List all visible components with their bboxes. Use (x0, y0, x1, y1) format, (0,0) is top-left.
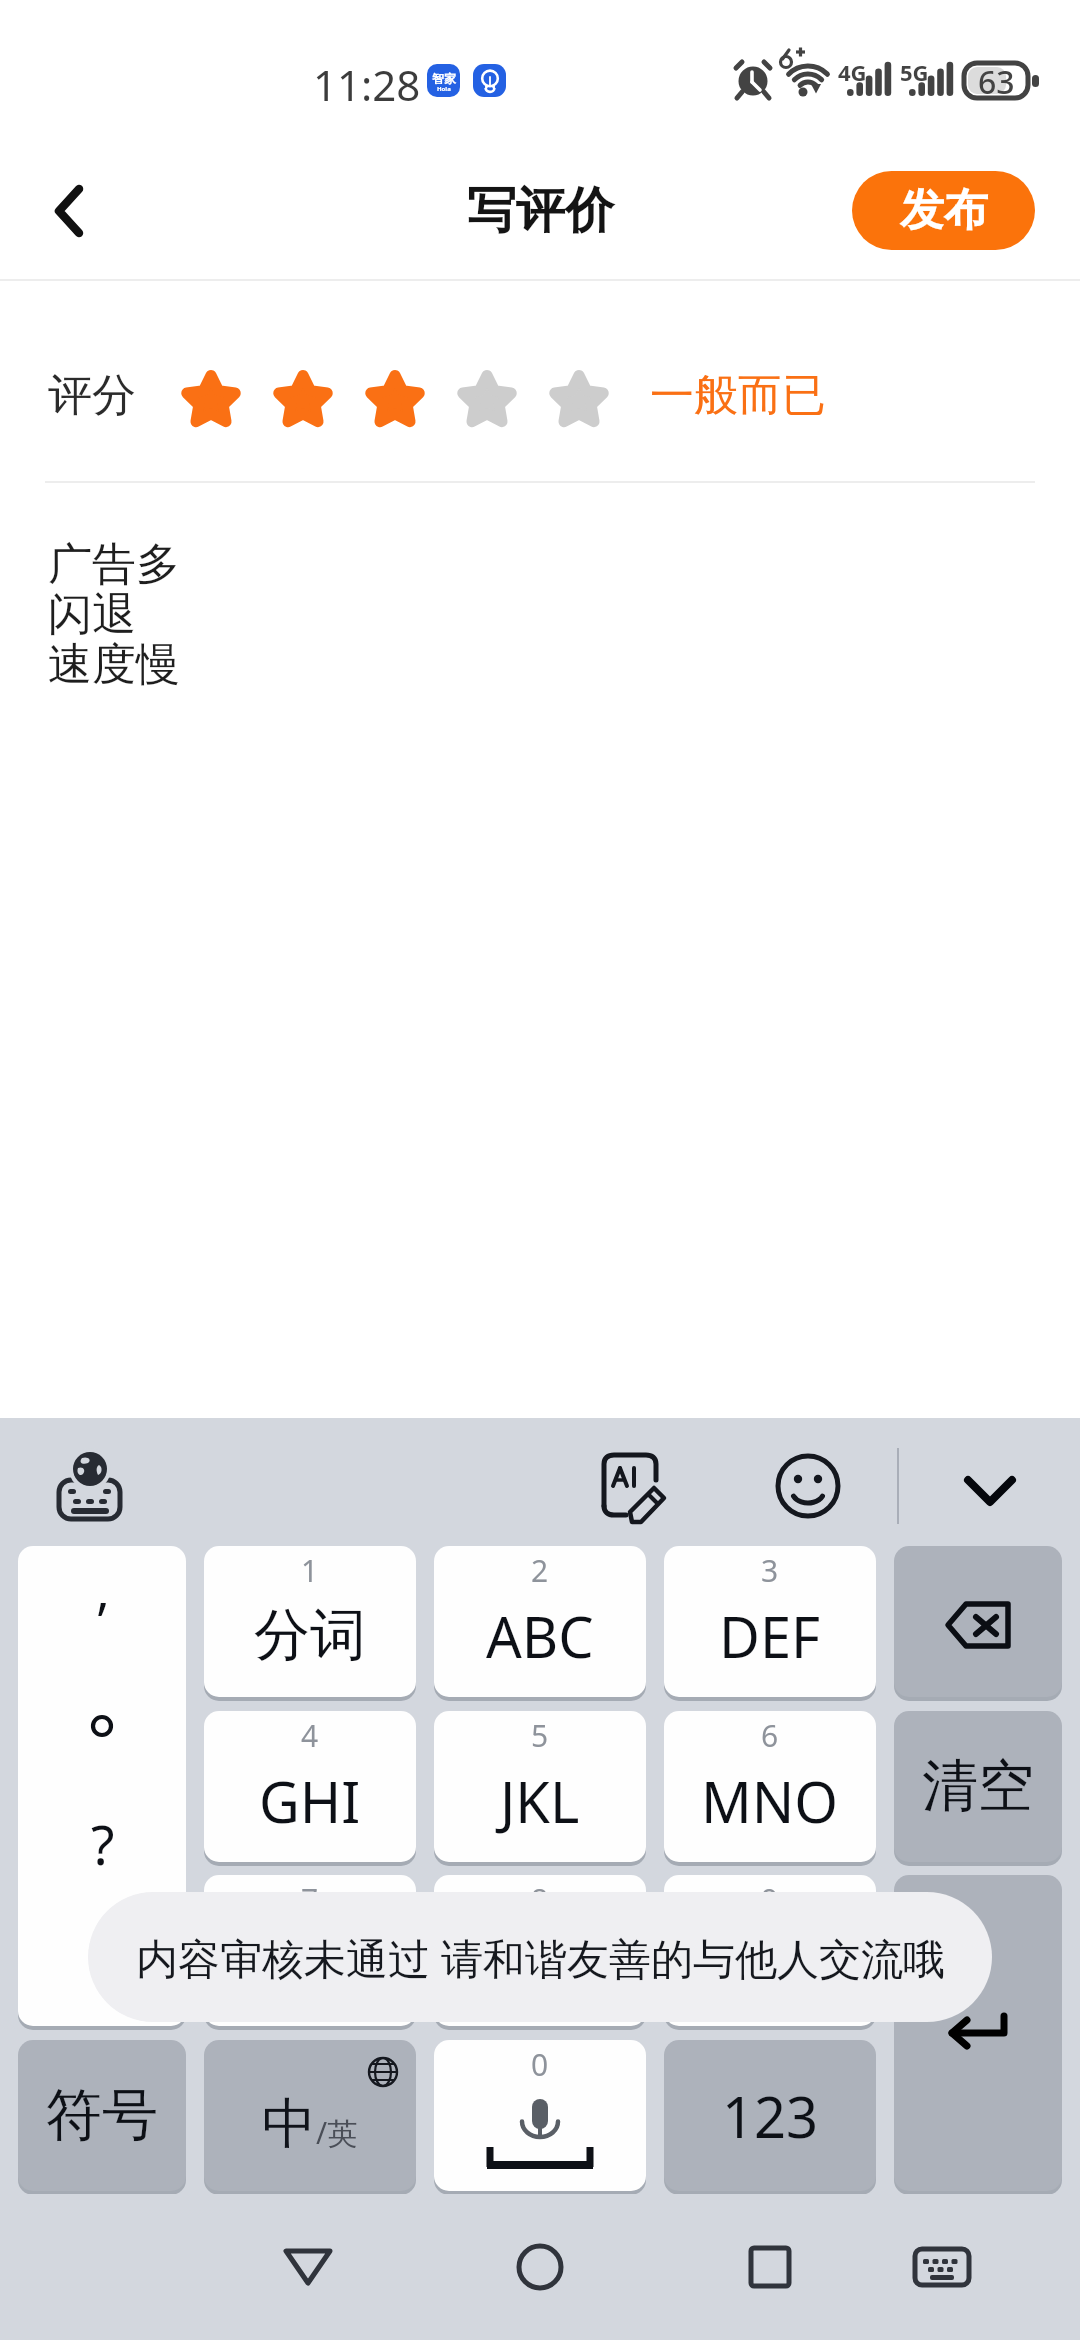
button[interactable]: 8 (434, 1875, 646, 2026)
button[interactable]: Keyboard (882, 2217, 1002, 2317)
staticText: 符号 (46, 2080, 158, 2151)
staticText: 2 (531, 1550, 549, 1591)
staticText: DEF (719, 1598, 821, 1674)
staticText: 11:28 (313, 56, 421, 113)
button[interactable]: 2 (434, 1546, 646, 1697)
button[interactable]: 符号 (18, 2040, 186, 2191)
staticText: 清空 (922, 1751, 1034, 1822)
staticText: 123 (722, 2078, 819, 2154)
staticText: , (96, 1553, 110, 1624)
button[interactable]: 0 (434, 2040, 646, 2191)
staticText: 8 (531, 1879, 549, 1920)
staticText: ? (91, 1807, 115, 1881)
button[interactable]: 1 (204, 1546, 416, 1697)
button[interactable]: Input languages (42, 1438, 138, 1534)
staticText: 1 (301, 1550, 319, 1591)
button[interactable]: 4 (204, 1711, 416, 1862)
staticText: 5 (531, 1715, 549, 1756)
staticText: GHI (259, 1763, 361, 1839)
button[interactable] (894, 1546, 1062, 1697)
button[interactable]: , (18, 1546, 186, 2026)
button[interactable]: 5 (434, 1711, 646, 1862)
staticText: 内容审核未通过 请和谐友善的与他人交流哦 (136, 1929, 945, 1986)
staticText: 中 (262, 2090, 316, 2158)
staticText: WXYZ (706, 1932, 834, 1997)
staticText: 分词 (254, 1600, 366, 1671)
button[interactable]: 3 (664, 1546, 876, 1697)
button[interactable]: Hide keyboard (934, 1438, 1046, 1534)
staticText: TUV (487, 1927, 593, 2003)
button[interactable]: Back (248, 2217, 368, 2317)
button[interactable]: 6 (664, 1711, 876, 1862)
button[interactable]: Emoji (762, 1440, 854, 1532)
staticText: 5G (900, 57, 929, 87)
staticText: ABC (486, 1598, 594, 1674)
staticText: 评分 (48, 368, 136, 423)
staticText: 4G (838, 57, 867, 87)
button[interactable]: AI writing (586, 1440, 678, 1532)
button[interactable]: 9 (664, 1875, 876, 2026)
staticText: 3 (761, 1550, 779, 1591)
staticText: JKL (500, 1763, 580, 1839)
staticText: 63 (978, 60, 1015, 104)
staticText: /英 (316, 2112, 358, 2153)
button[interactable]: 发布 (852, 171, 1035, 250)
button[interactable]: 清空 (894, 1711, 1062, 1862)
button[interactable]: 7 (204, 1875, 416, 2026)
staticText: 6 (761, 1715, 779, 1756)
button[interactable]: Rating 3 of 5 (182, 355, 612, 435)
button[interactable] (894, 1875, 1062, 2191)
staticText: 智家 (432, 71, 456, 86)
button[interactable]: Recent apps (710, 2217, 830, 2317)
staticText: 4 (301, 1715, 319, 1756)
staticText: MNO (701, 1763, 839, 1839)
button[interactable]: 123 (664, 2040, 876, 2191)
button[interactable]: 中 (204, 2040, 416, 2191)
staticText: 一般而已 (650, 368, 826, 423)
staticText: 9 (761, 1879, 779, 1920)
staticText: 7 (301, 1879, 319, 1920)
staticText: 0 (531, 2044, 549, 2085)
button[interactable]: Back (0, 140, 135, 281)
staticText: 发布 (900, 183, 988, 238)
staticText: PQRS (249, 1932, 372, 1997)
button[interactable]: Home (480, 2217, 600, 2317)
staticText: Hola (437, 85, 451, 93)
staticText: 写评价 (467, 180, 614, 242)
staticText: 广告多 闪退 速度慢 (48, 537, 180, 692)
